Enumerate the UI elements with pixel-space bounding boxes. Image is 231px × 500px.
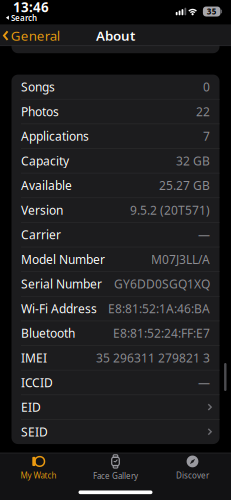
staticText: Version bbox=[21, 202, 63, 218]
staticText: 0 bbox=[203, 79, 210, 95]
staticText: — bbox=[198, 374, 210, 390]
staticText: 7 bbox=[203, 128, 210, 144]
button[interactable]: Face Gallery bbox=[93, 455, 138, 481]
staticText: 9.5.2 (20T571) bbox=[130, 202, 210, 218]
staticText: 25.27 GB bbox=[159, 177, 210, 193]
staticText: IMEI bbox=[21, 350, 47, 366]
staticText: My Watch bbox=[20, 470, 56, 481]
staticText: Photos bbox=[21, 104, 59, 119]
button[interactable]: Back to Search bbox=[6, 12, 37, 23]
staticText: 35 296311 279821 3 bbox=[96, 350, 210, 366]
staticText: 13:46 bbox=[13, 0, 49, 16]
staticText: General bbox=[11, 27, 60, 44]
staticText: Carrier bbox=[21, 227, 61, 243]
staticText: E8:81:52:1A:46:BA bbox=[108, 301, 210, 316]
staticText: GY6DD0SGQ1XQ bbox=[114, 276, 210, 292]
staticText: 35 bbox=[207, 6, 217, 17]
staticText: — bbox=[198, 227, 210, 243]
staticText: EID bbox=[21, 399, 41, 415]
staticText: Capacity bbox=[21, 153, 69, 169]
staticText: Bluetooth bbox=[21, 325, 75, 341]
button[interactable]: EID bbox=[11, 395, 219, 419]
staticText: 22 bbox=[196, 104, 210, 119]
staticText: Search bbox=[11, 12, 37, 23]
staticText: M07J3LL/A bbox=[151, 251, 210, 267]
button[interactable]: Discover bbox=[176, 455, 209, 481]
staticText: Serial Number bbox=[21, 276, 102, 292]
staticText: About bbox=[96, 27, 135, 44]
staticText: SEID bbox=[21, 424, 48, 440]
staticText: Applications bbox=[21, 128, 89, 144]
staticText: Face Gallery bbox=[93, 470, 138, 481]
staticText: E8:81:52:24:FF:E7 bbox=[113, 325, 210, 341]
staticText: 32 GB bbox=[176, 153, 210, 169]
button[interactable]: SEID bbox=[11, 419, 219, 444]
staticText: Model Number bbox=[21, 251, 105, 267]
staticText: Wi-Fi Address bbox=[21, 301, 97, 316]
staticText: Available bbox=[21, 177, 72, 193]
staticText: Discover bbox=[176, 470, 209, 481]
staticText: Songs bbox=[21, 79, 55, 95]
staticText: ICCID bbox=[21, 374, 53, 390]
button[interactable]: General bbox=[3, 27, 60, 44]
button[interactable]: My Watch bbox=[20, 455, 56, 481]
